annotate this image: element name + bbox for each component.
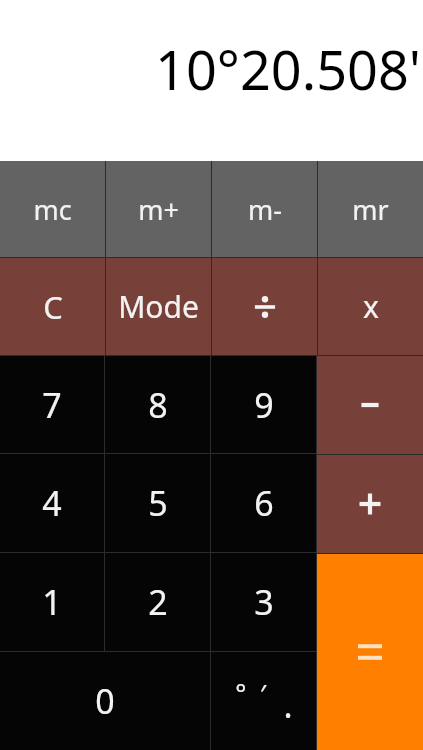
staticText: C <box>43 286 63 328</box>
staticText: 10°20.508' <box>155 32 421 106</box>
staticText: Mode <box>118 286 199 327</box>
button[interactable]: m- <box>212 161 317 257</box>
staticText: 8 <box>148 382 168 428</box>
button[interactable]: 1 <box>0 553 104 651</box>
staticText: mc <box>33 191 72 228</box>
button[interactable]: Divide <box>212 258 317 355</box>
button[interactable]: Degrees minutes decimal <box>211 652 316 750</box>
button[interactable]: 6 <box>211 454 316 552</box>
staticText: x <box>363 286 379 327</box>
staticText: 0 <box>95 678 115 724</box>
staticText: 7 <box>42 382 62 428</box>
staticText: 6 <box>254 480 274 526</box>
button[interactable]: 9 <box>211 356 316 453</box>
button[interactable]: Minus <box>317 356 423 454</box>
staticText: 1 <box>42 579 62 625</box>
button[interactable]: 7 <box>0 356 104 453</box>
button[interactable]: Mode <box>106 258 211 355</box>
button[interactable]: m+ <box>106 161 211 257</box>
button[interactable]: 0 <box>0 652 210 750</box>
button[interactable]: C <box>0 258 105 355</box>
staticText: 4 <box>42 480 62 526</box>
button[interactable]: mc <box>0 161 105 257</box>
button[interactable]: 2 <box>105 553 210 651</box>
staticText: 9 <box>254 382 274 428</box>
button[interactable]: Plus <box>317 455 423 553</box>
staticText: 2 <box>148 579 168 625</box>
button[interactable]: 3 <box>211 553 316 651</box>
button[interactable]: 5 <box>105 454 210 552</box>
button[interactable]: mr <box>318 161 423 257</box>
staticText: 3 <box>254 579 274 625</box>
button[interactable]: 4 <box>0 454 104 552</box>
staticText: m- <box>248 191 282 228</box>
staticText: mr <box>352 191 389 228</box>
staticText: ° ′ . <box>235 675 293 728</box>
button[interactable]: 8 <box>105 356 210 453</box>
button[interactable]: Equals <box>317 554 423 750</box>
staticText: m+ <box>138 191 179 228</box>
staticText: 5 <box>148 480 168 526</box>
button[interactable]: Multiply <box>318 258 423 355</box>
